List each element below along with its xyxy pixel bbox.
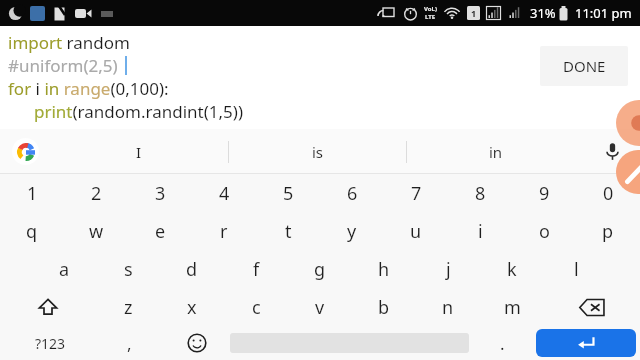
- button[interactable]: f: [224, 250, 288, 288]
- staticText: 1: [471, 7, 477, 19]
- button[interactable]: j: [416, 250, 480, 288]
- staticText: in: [489, 142, 503, 162]
- button[interactable]: k: [480, 250, 544, 288]
- button[interactable]: l: [544, 250, 608, 288]
- staticText: g: [314, 257, 326, 282]
- button[interactable]: .: [469, 326, 536, 360]
- staticText: r: [220, 219, 228, 244]
- button[interactable]: 2: [64, 174, 128, 212]
- button[interactable]: I: [50, 129, 228, 174]
- button[interactable]: n: [416, 288, 480, 326]
- staticText: m: [504, 295, 521, 320]
- staticText: d: [186, 257, 198, 282]
- button[interactable]: Record: [616, 100, 640, 146]
- button[interactable]: y: [320, 212, 384, 250]
- staticText: 7: [411, 181, 422, 206]
- button[interactable]: v: [288, 288, 352, 326]
- staticText: b: [378, 295, 390, 320]
- button[interactable]: e: [128, 212, 192, 250]
- button[interactable]: p: [576, 212, 640, 250]
- button[interactable]: 7: [384, 174, 448, 212]
- button[interactable]: 5: [256, 174, 320, 212]
- button[interactable]: m: [480, 288, 544, 326]
- staticText: I: [136, 142, 142, 162]
- staticText: LTE: [425, 13, 436, 21]
- staticText: VoL): [424, 5, 437, 13]
- staticText: .: [500, 332, 505, 355]
- staticText: 11:01 pm: [575, 4, 632, 22]
- button[interactable]: b: [352, 288, 416, 326]
- staticText: v: [315, 295, 325, 320]
- staticText: s: [124, 257, 133, 282]
- staticText: ?123: [35, 334, 66, 353]
- staticText: a: [59, 257, 70, 282]
- button[interactable]: 8: [448, 174, 512, 212]
- button[interactable]: Google: [0, 129, 50, 174]
- staticText: 3: [155, 181, 166, 206]
- button[interactable]: is: [229, 129, 406, 174]
- button[interactable]: Emoji: [163, 326, 230, 360]
- button[interactable]: Voice input: [584, 129, 640, 174]
- staticText: j: [446, 257, 451, 282]
- staticText: i: [478, 219, 483, 244]
- staticText: 4: [219, 181, 230, 206]
- button[interactable]: DONE: [540, 46, 628, 86]
- button[interactable]: z: [96, 288, 160, 326]
- staticText: c: [252, 295, 261, 320]
- staticText: k: [507, 257, 517, 282]
- button[interactable]: d: [160, 250, 224, 288]
- staticText: y: [347, 219, 357, 244]
- button[interactable]: 4: [192, 174, 256, 212]
- staticText: z: [124, 295, 133, 320]
- staticText: l: [574, 257, 579, 282]
- button[interactable]: 1: [0, 174, 64, 212]
- staticText: ,: [127, 332, 132, 355]
- staticText: 8: [475, 181, 486, 206]
- staticText: is: [312, 142, 324, 162]
- button[interactable]: a: [32, 250, 96, 288]
- button[interactable]: c: [224, 288, 288, 326]
- button[interactable]: Shift: [0, 288, 96, 326]
- button[interactable]: t: [256, 212, 320, 250]
- staticText: #uniform(2,5): [8, 54, 118, 77]
- button[interactable]: r: [192, 212, 256, 250]
- button[interactable]: i: [448, 212, 512, 250]
- staticText: h: [378, 257, 390, 282]
- staticText: 1: [27, 181, 38, 206]
- button[interactable]: s: [96, 250, 160, 288]
- staticText: p: [602, 219, 614, 244]
- button[interactable]: u: [384, 212, 448, 250]
- staticText: n: [442, 295, 454, 320]
- button[interactable]: o: [512, 212, 576, 250]
- staticText: 6: [347, 181, 358, 206]
- button[interactable]: Backspace: [544, 288, 640, 326]
- staticText: f: [253, 257, 260, 282]
- staticText: 2: [91, 181, 102, 206]
- button[interactable]: 9: [512, 174, 576, 212]
- button[interactable]: in: [407, 129, 584, 174]
- button[interactable]: Enter: [536, 329, 636, 357]
- staticText: DONE: [563, 56, 606, 76]
- staticText: print(random.randint(1,5)): [34, 100, 244, 123]
- staticText: u: [410, 219, 422, 244]
- staticText: 9: [539, 181, 550, 206]
- staticText: q: [26, 219, 38, 244]
- button[interactable]: q: [0, 212, 64, 250]
- staticText: 5: [283, 181, 294, 206]
- button[interactable]: w: [64, 212, 128, 250]
- button[interactable]: ?123: [4, 326, 96, 360]
- staticText: 31%: [530, 4, 556, 22]
- staticText: 0: [603, 181, 614, 206]
- button[interactable]: 0: [576, 174, 640, 212]
- button[interactable]: ,: [96, 326, 163, 360]
- staticText: t: [285, 219, 292, 244]
- button[interactable]: Edit: [616, 150, 640, 194]
- button[interactable]: g: [288, 250, 352, 288]
- staticText: o: [539, 219, 550, 244]
- button[interactable]: 6: [320, 174, 384, 212]
- staticText: import random: [8, 31, 130, 54]
- button[interactable]: 3: [128, 174, 192, 212]
- button[interactable]: h: [352, 250, 416, 288]
- button[interactable]: x: [160, 288, 224, 326]
